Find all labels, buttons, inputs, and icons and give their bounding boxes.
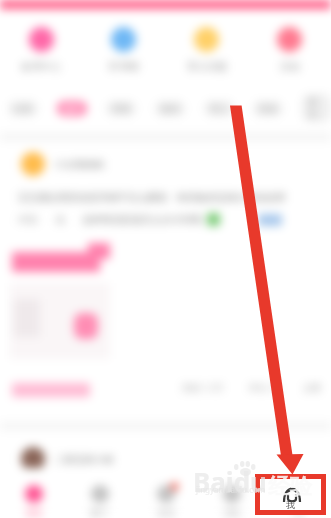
staticText: 小太阳妈妈 bbox=[54, 158, 104, 171]
staticText: 今天带两个娃去公园玩了一整天好累呀 bbox=[14, 482, 184, 495]
staticText: 浏览 1.2万 bbox=[182, 381, 225, 393]
staticText: 全部 bbox=[14, 103, 32, 114]
staticText: 辣妈 bbox=[161, 103, 179, 114]
staticText: 我 bbox=[286, 499, 295, 510]
staticText: 美食 bbox=[259, 103, 277, 114]
button[interactable]: 孕期 bbox=[106, 101, 136, 116]
button[interactable]: 我 bbox=[265, 468, 331, 518]
staticText: jingyan.baidu.com bbox=[196, 484, 266, 495]
staticText: 消息 bbox=[223, 507, 241, 518]
staticText: 活动 bbox=[280, 60, 300, 73]
staticText: 育儿 bbox=[210, 103, 228, 114]
button[interactable]: 活动 bbox=[248, 27, 331, 73]
staticText: 评论 12 bbox=[249, 381, 280, 393]
button[interactable]: 怀孕期 bbox=[82, 27, 165, 73]
button[interactable]: 我 tab bbox=[260, 479, 321, 510]
staticText: 孕期 bbox=[112, 103, 130, 114]
staticText: 瘦身 bbox=[308, 96, 325, 120]
button[interactable]: 二胎宝妈小林 bbox=[0, 430, 331, 495]
staticText: 经验 bbox=[268, 473, 312, 501]
other: Highlight annotation bbox=[0, 0, 331, 518]
button[interactable]: 辣妈 bbox=[155, 101, 185, 116]
staticText: 备孕 bbox=[63, 103, 81, 114]
button[interactable]: 圈子 bbox=[67, 468, 133, 518]
button[interactable]: 消息 bbox=[199, 468, 265, 518]
staticText: 首页 bbox=[25, 507, 43, 518]
button[interactable]: 备孕中心 bbox=[0, 27, 82, 73]
button[interactable]: 首页 bbox=[0, 468, 67, 518]
staticText: 我 bbox=[294, 507, 303, 518]
button[interactable]: 美食 bbox=[253, 101, 283, 116]
button[interactable]: 瘦身 bbox=[302, 94, 331, 122]
button[interactable]: 全部 bbox=[8, 101, 38, 116]
staticText: 求助 bbox=[18, 213, 38, 226]
staticText: 备孕中心 bbox=[21, 60, 61, 73]
staticText: 育儿话题 bbox=[187, 60, 227, 73]
staticText: 圈子 bbox=[91, 507, 109, 518]
staticText: 怀孕期 bbox=[109, 60, 139, 73]
button[interactable]: 育儿 bbox=[204, 101, 234, 116]
staticText: 宝宝最近夜里老是哭闹不怎么睡觉 有经验的宝妈们来说说呀 bbox=[18, 190, 286, 204]
staticText: 这种情况应该怎么办才好呢 bbox=[82, 213, 202, 226]
button[interactable]: 备孕 bbox=[57, 101, 87, 116]
button[interactable]: 发现 bbox=[133, 468, 199, 518]
staticText: 二胎宝妈小林 bbox=[54, 453, 114, 466]
staticText: Baidu bbox=[193, 464, 267, 499]
button[interactable]: 育儿话题 bbox=[165, 27, 248, 73]
staticText: 点赞 bbox=[303, 382, 321, 393]
